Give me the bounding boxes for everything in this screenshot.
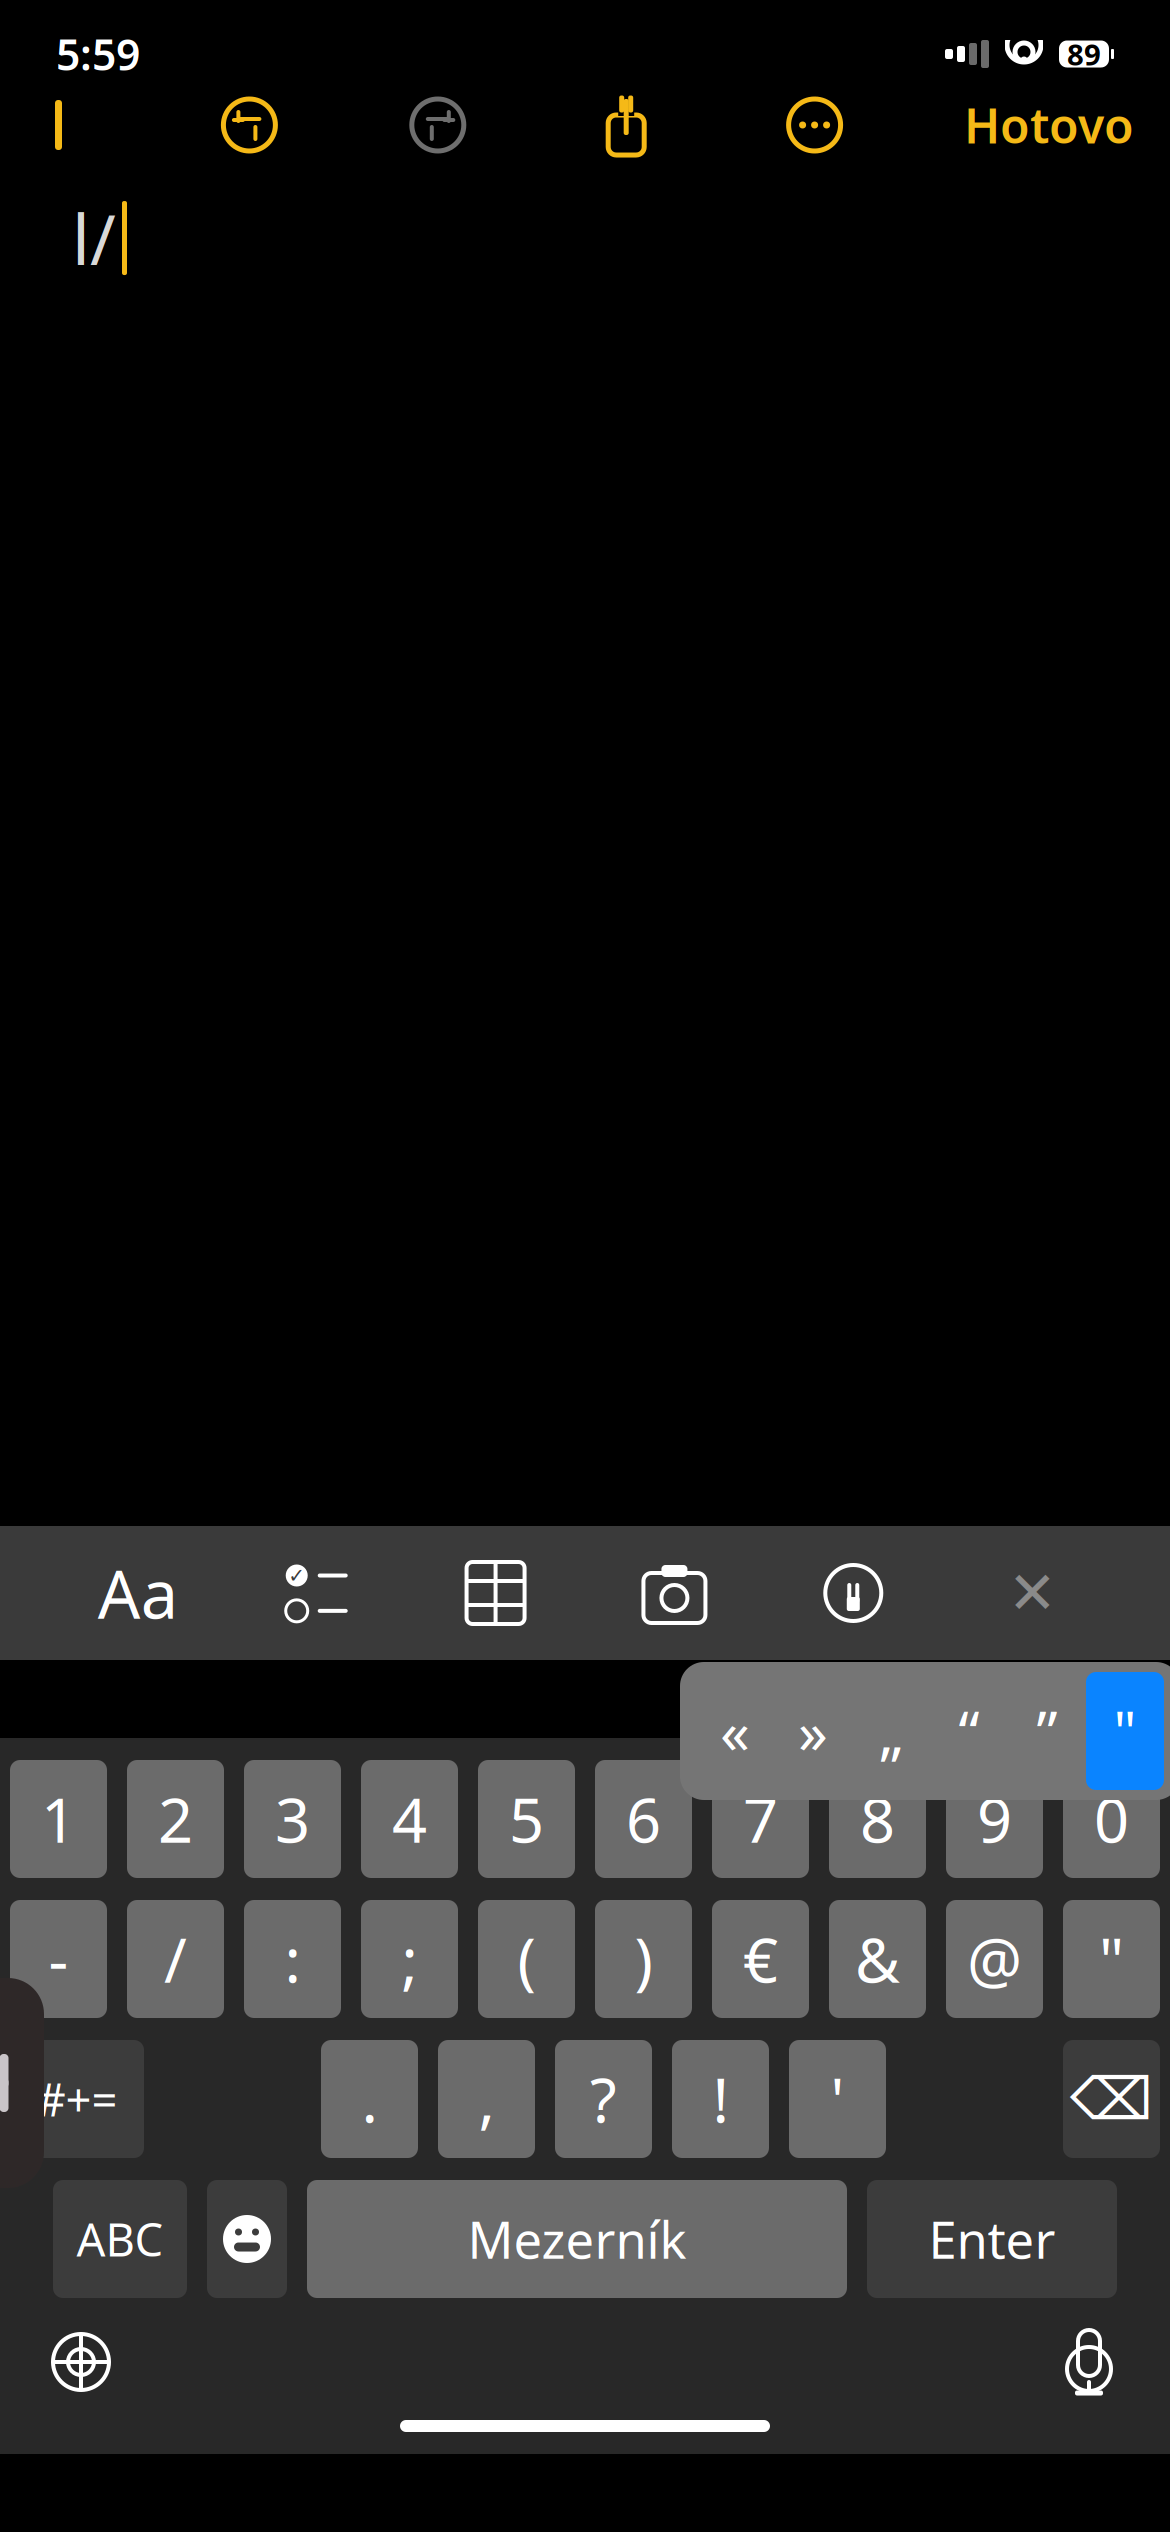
button[interactable]: 5: [478, 1760, 575, 1878]
staticText: Aa: [98, 1549, 178, 1637]
staticText: 1: [41, 1778, 76, 1860]
staticText: l/: [72, 192, 116, 284]
button[interactable]: ': [789, 2040, 886, 2158]
button[interactable]: Markup: [798, 1538, 908, 1648]
button[interactable]: @: [946, 1900, 1043, 2018]
staticText: -: [48, 1918, 68, 2000]
button[interactable]: More: [776, 86, 854, 164]
staticText: 0: [1094, 1778, 1129, 1860]
button[interactable]: ,: [438, 2040, 535, 2158]
button[interactable]: &: [829, 1900, 926, 2018]
staticText: ✕: [1008, 1560, 1057, 1626]
staticText: :: [284, 1918, 300, 2000]
staticText: ): [634, 1918, 652, 2000]
button[interactable]: !: [672, 2040, 769, 2158]
button[interactable]: :: [244, 1900, 341, 2018]
button[interactable]: ABC: [53, 2180, 187, 2298]
staticText: 89: [1067, 34, 1101, 73]
staticText: @: [967, 1918, 1022, 2000]
staticText: ?: [590, 2058, 617, 2140]
staticText: ;: [401, 1918, 417, 2000]
button[interactable]: ": [1063, 1900, 1160, 2018]
staticText: 2: [158, 1778, 193, 1860]
staticText: ': [830, 2058, 844, 2140]
button[interactable]: Open drawer: [0, 1978, 44, 2188]
button[interactable]: Emoji: [207, 2180, 287, 2298]
button[interactable]: 1: [10, 1760, 107, 1878]
button[interactable]: -: [10, 1900, 107, 2018]
button[interactable]: Dictation: [1034, 2312, 1144, 2412]
button[interactable]: /: [127, 1900, 224, 2018]
button[interactable]: €: [712, 1900, 809, 2018]
staticText: (: [517, 1918, 535, 2000]
staticText: ,: [478, 2058, 494, 2140]
staticText: Mezerník: [467, 2205, 686, 2273]
staticText: 4: [392, 1778, 427, 1860]
staticText: 5: [509, 1778, 544, 1860]
staticText: «: [720, 1692, 750, 1770]
button[interactable]: Redo: [399, 86, 477, 164]
button[interactable]: 6: [595, 1760, 692, 1878]
button[interactable]: Hotovo: [964, 86, 1134, 164]
staticText: 8: [860, 1778, 895, 1860]
button[interactable]: 8: [829, 1760, 926, 1878]
staticText: »: [798, 1692, 828, 1770]
staticText: ABC: [76, 2209, 163, 2269]
button[interactable]: 7: [712, 1760, 809, 1878]
staticText: Enter: [928, 2205, 1055, 2273]
staticText: /: [164, 1918, 187, 2000]
staticText: !: [712, 2058, 728, 2140]
staticText: 3: [275, 1778, 310, 1860]
button[interactable]: Next keyboard: [26, 2312, 136, 2412]
button[interactable]: Close: [977, 1538, 1087, 1648]
staticText: „: [879, 1692, 903, 1770]
staticText: €: [743, 1918, 778, 2000]
button[interactable]: Table: [441, 1538, 551, 1648]
staticText: ”: [1036, 1692, 1057, 1770]
staticText: “: [958, 1692, 979, 1770]
button[interactable]: Delete: [1063, 2040, 1160, 2158]
button[interactable]: Share: [587, 86, 665, 164]
button[interactable]: Checklist: [262, 1538, 372, 1648]
button[interactable]: Undo: [210, 86, 288, 164]
staticText: ": [1099, 1918, 1124, 2000]
button[interactable]: Camera: [619, 1538, 729, 1648]
staticText: &: [855, 1918, 900, 2000]
staticText: ✓: [288, 1564, 305, 1587]
button[interactable]: 4: [361, 1760, 458, 1878]
button[interactable]: Text formatting: [83, 1538, 193, 1648]
staticText: #+=: [36, 2069, 117, 2129]
button[interactable]: #+=: [10, 2040, 144, 2158]
staticText: .: [361, 2058, 377, 2140]
button[interactable]: .: [321, 2040, 418, 2158]
staticText: 9: [977, 1778, 1012, 1860]
button[interactable]: ;: [361, 1900, 458, 2018]
button[interactable]: Mezerník: [307, 2180, 847, 2298]
button[interactable]: 3: [244, 1760, 341, 1878]
staticText: 7: [743, 1778, 778, 1860]
button[interactable]: 0: [1063, 1760, 1160, 1878]
button[interactable]: (: [478, 1900, 575, 2018]
staticText: ": [1113, 1694, 1136, 1768]
staticText: 5:59: [56, 26, 140, 82]
staticText: 6: [626, 1778, 661, 1860]
staticText: Hotovo: [964, 93, 1134, 157]
button[interactable]: 2: [127, 1760, 224, 1878]
button[interactable]: 9: [946, 1760, 1043, 1878]
button[interactable]: Back: [26, 86, 100, 164]
button[interactable]: ): [595, 1900, 692, 2018]
staticText: ⌫: [1070, 2066, 1153, 2132]
button[interactable]: ?: [555, 2040, 652, 2158]
button[interactable]: Enter: [867, 2180, 1117, 2298]
